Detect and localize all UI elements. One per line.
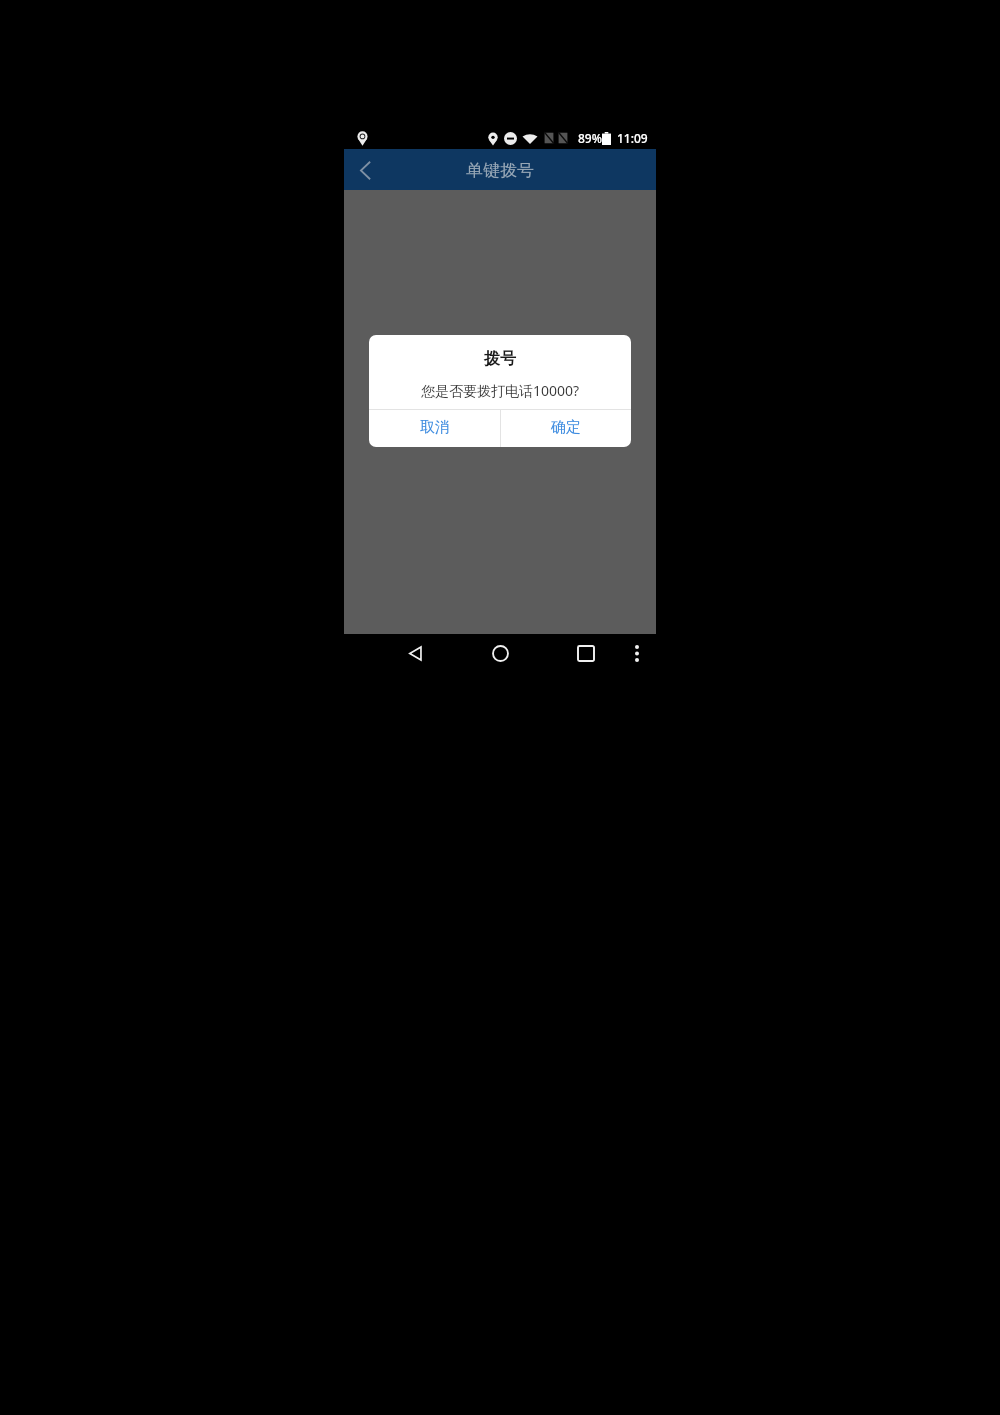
staticText: 89% <box>578 130 602 146</box>
button[interactable]: Navigate up <box>344 149 386 190</box>
staticText: 拨号 <box>369 349 631 369</box>
button[interactable]: Recent apps <box>572 639 600 667</box>
button[interactable]: Back <box>401 639 429 667</box>
staticText: 单键拨号 <box>466 160 534 181</box>
button[interactable]: 取消 <box>369 410 500 447</box>
staticText: 取消 <box>420 418 450 437</box>
button[interactable]: More options <box>623 639 651 667</box>
staticText: 您是否要拨打电话10000? <box>369 381 631 400</box>
staticText: 11:09 <box>617 130 648 146</box>
staticText: 确定 <box>551 418 581 437</box>
button[interactable]: Home <box>486 639 514 667</box>
button[interactable]: 确定 <box>501 410 631 447</box>
